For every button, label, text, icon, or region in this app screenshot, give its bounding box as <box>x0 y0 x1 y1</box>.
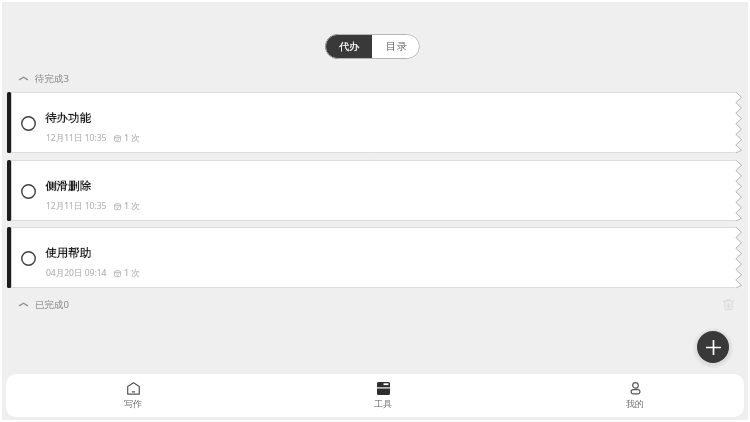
button[interactable]: 工具 <box>323 374 443 417</box>
button[interactable]: Add <box>697 331 729 363</box>
button[interactable]: 侧滑删除 <box>2 160 748 221</box>
staticText: 12月11日 10:35 <box>46 200 107 212</box>
staticText: 目录 <box>386 40 407 53</box>
button[interactable]: 代办 <box>325 34 372 59</box>
button[interactable]: 我的 <box>575 374 695 417</box>
staticText: 1 次 <box>124 267 140 279</box>
staticText: 工具 <box>374 398 392 409</box>
button[interactable]: 使用帮助 <box>2 227 748 288</box>
button[interactable]: 目录 <box>372 34 420 59</box>
button[interactable]: 已完成0 <box>2 296 748 312</box>
staticText: 待办功能 <box>45 111 91 125</box>
button[interactable]: 待办功能 <box>2 92 748 153</box>
button[interactable]: 待完成3 <box>2 70 748 86</box>
staticText: 04月20日 09:14 <box>46 267 107 279</box>
staticText: 写作 <box>124 398 142 409</box>
staticText: 侧滑删除 <box>45 179 91 193</box>
button[interactable]: Delete completed <box>719 296 737 312</box>
staticText: 12月11日 10:35 <box>46 132 107 144</box>
staticText: 我的 <box>626 398 644 409</box>
staticText: 1 次 <box>124 200 140 212</box>
staticText: 使用帮助 <box>45 246 91 260</box>
staticText: 已完成0 <box>35 298 69 311</box>
staticText: 代办 <box>339 40 359 53</box>
staticText: 待完成3 <box>35 72 69 85</box>
staticText: 1 次 <box>124 132 140 144</box>
button[interactable]: 写作 <box>73 374 193 417</box>
